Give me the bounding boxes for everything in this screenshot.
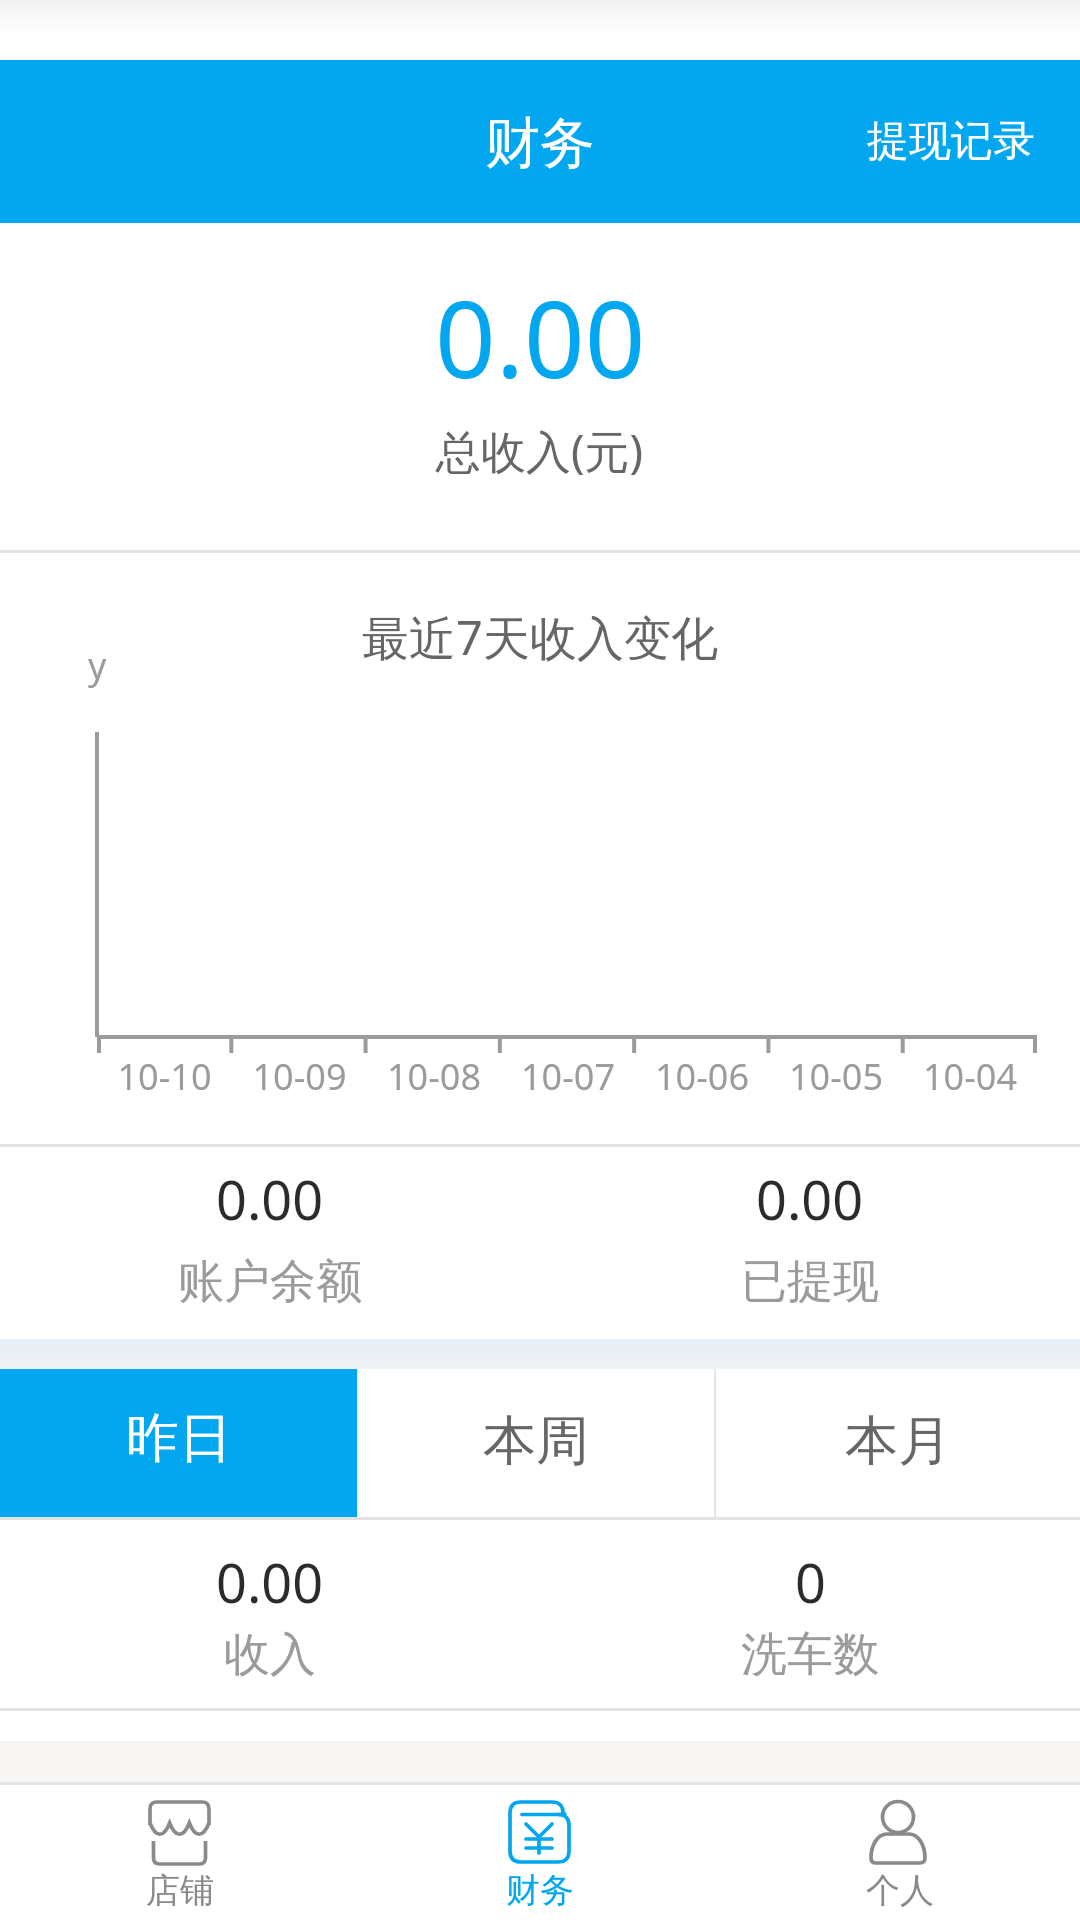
staticText: 10-05 — [769, 1052, 903, 1101]
other: 财务 — [505, 1798, 575, 1868]
button[interactable]: 0.00 — [0, 1516, 540, 1706]
staticText: 10-06 — [635, 1052, 769, 1101]
staticText: 账户余额 — [178, 1253, 362, 1311]
button[interactable]: 提现记录 — [858, 76, 1043, 206]
staticText: 已提现 — [741, 1253, 879, 1311]
button[interactable]: 财务 — [360, 1785, 720, 1920]
button[interactable]: 本周 — [357, 1369, 714, 1517]
staticText: 0.00 — [216, 1162, 324, 1236]
button[interactable]: 0 — [540, 1516, 1080, 1706]
staticText: 店铺 — [146, 1869, 214, 1912]
staticText: 本周 — [483, 1408, 589, 1475]
staticText: 0.00 — [216, 1545, 324, 1619]
staticText: 财务 — [506, 1869, 574, 1912]
staticText: 收入 — [224, 1626, 316, 1684]
button[interactable]: 店铺 — [0, 1785, 360, 1920]
button[interactable]: 昨日 — [0, 1369, 357, 1517]
staticText: 洗车数 — [741, 1626, 879, 1684]
button[interactable]: 个人 — [720, 1785, 1080, 1920]
staticText: 本月 — [845, 1408, 951, 1475]
staticText: 提现记录 — [867, 115, 1035, 168]
other: 店铺 — [145, 1798, 215, 1868]
staticText: 总收入(元) — [436, 420, 644, 481]
button[interactable]: 本月 — [716, 1369, 1080, 1517]
other: 个人 — [865, 1798, 935, 1868]
staticText: 0 — [795, 1545, 826, 1619]
staticText: 10-08 — [367, 1052, 501, 1101]
staticText: 个人 — [866, 1869, 934, 1912]
staticText: 10-09 — [232, 1052, 367, 1101]
button[interactable]: 0.00 — [0, 1146, 540, 1336]
staticText: 0.00 — [756, 1162, 864, 1236]
staticText: 财务 — [485, 109, 595, 178]
staticText: y — [88, 641, 107, 690]
staticText: 昨日 — [126, 1405, 232, 1472]
staticText: 10-10 — [97, 1052, 232, 1101]
staticText: 10-07 — [501, 1052, 635, 1101]
staticText: 最近7天收入变化 — [362, 605, 718, 669]
staticText: 0.00 — [435, 265, 646, 409]
staticText: 10-04 — [903, 1052, 1037, 1101]
button[interactable]: 0.00 — [540, 1146, 1080, 1336]
